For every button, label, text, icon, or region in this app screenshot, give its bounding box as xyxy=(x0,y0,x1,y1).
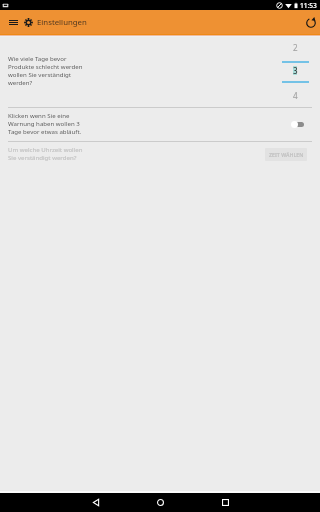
button[interactable]: Aktualisieren xyxy=(302,14,320,32)
staticText: Einstellungen xyxy=(37,17,87,28)
button[interactable]: Startbildschirm xyxy=(150,493,170,512)
button[interactable]: Übersicht xyxy=(215,493,235,512)
button[interactable]: Menü xyxy=(5,14,21,30)
button[interactable]: Wie viele Tage bevor Produkte schlecht w… xyxy=(0,37,320,108)
button[interactable]: Klicken wenn Sie eine Warnung haben woll… xyxy=(0,108,320,142)
button[interactable]: Warnung aktivieren xyxy=(290,116,306,132)
staticText: ZEIT WÄHLEN xyxy=(269,151,304,158)
staticText: Wie viele Tage bevor Produkte schlecht w… xyxy=(8,54,84,86)
button[interactable]: Zurück xyxy=(86,493,106,512)
staticText: 2 xyxy=(293,42,298,53)
button[interactable]: Anzahl Tage auswählen xyxy=(281,43,309,99)
staticText: Klicken wenn Sie eine Warnung haben woll… xyxy=(8,111,84,135)
button[interactable]: ZEIT WÄHLEN xyxy=(265,148,307,161)
staticText: 11:53 xyxy=(300,1,317,10)
staticText: 3 xyxy=(293,65,298,76)
staticText: Um welche Uhrzeit wollen Sie verständigt… xyxy=(8,145,84,161)
staticText: 4 xyxy=(293,90,298,101)
